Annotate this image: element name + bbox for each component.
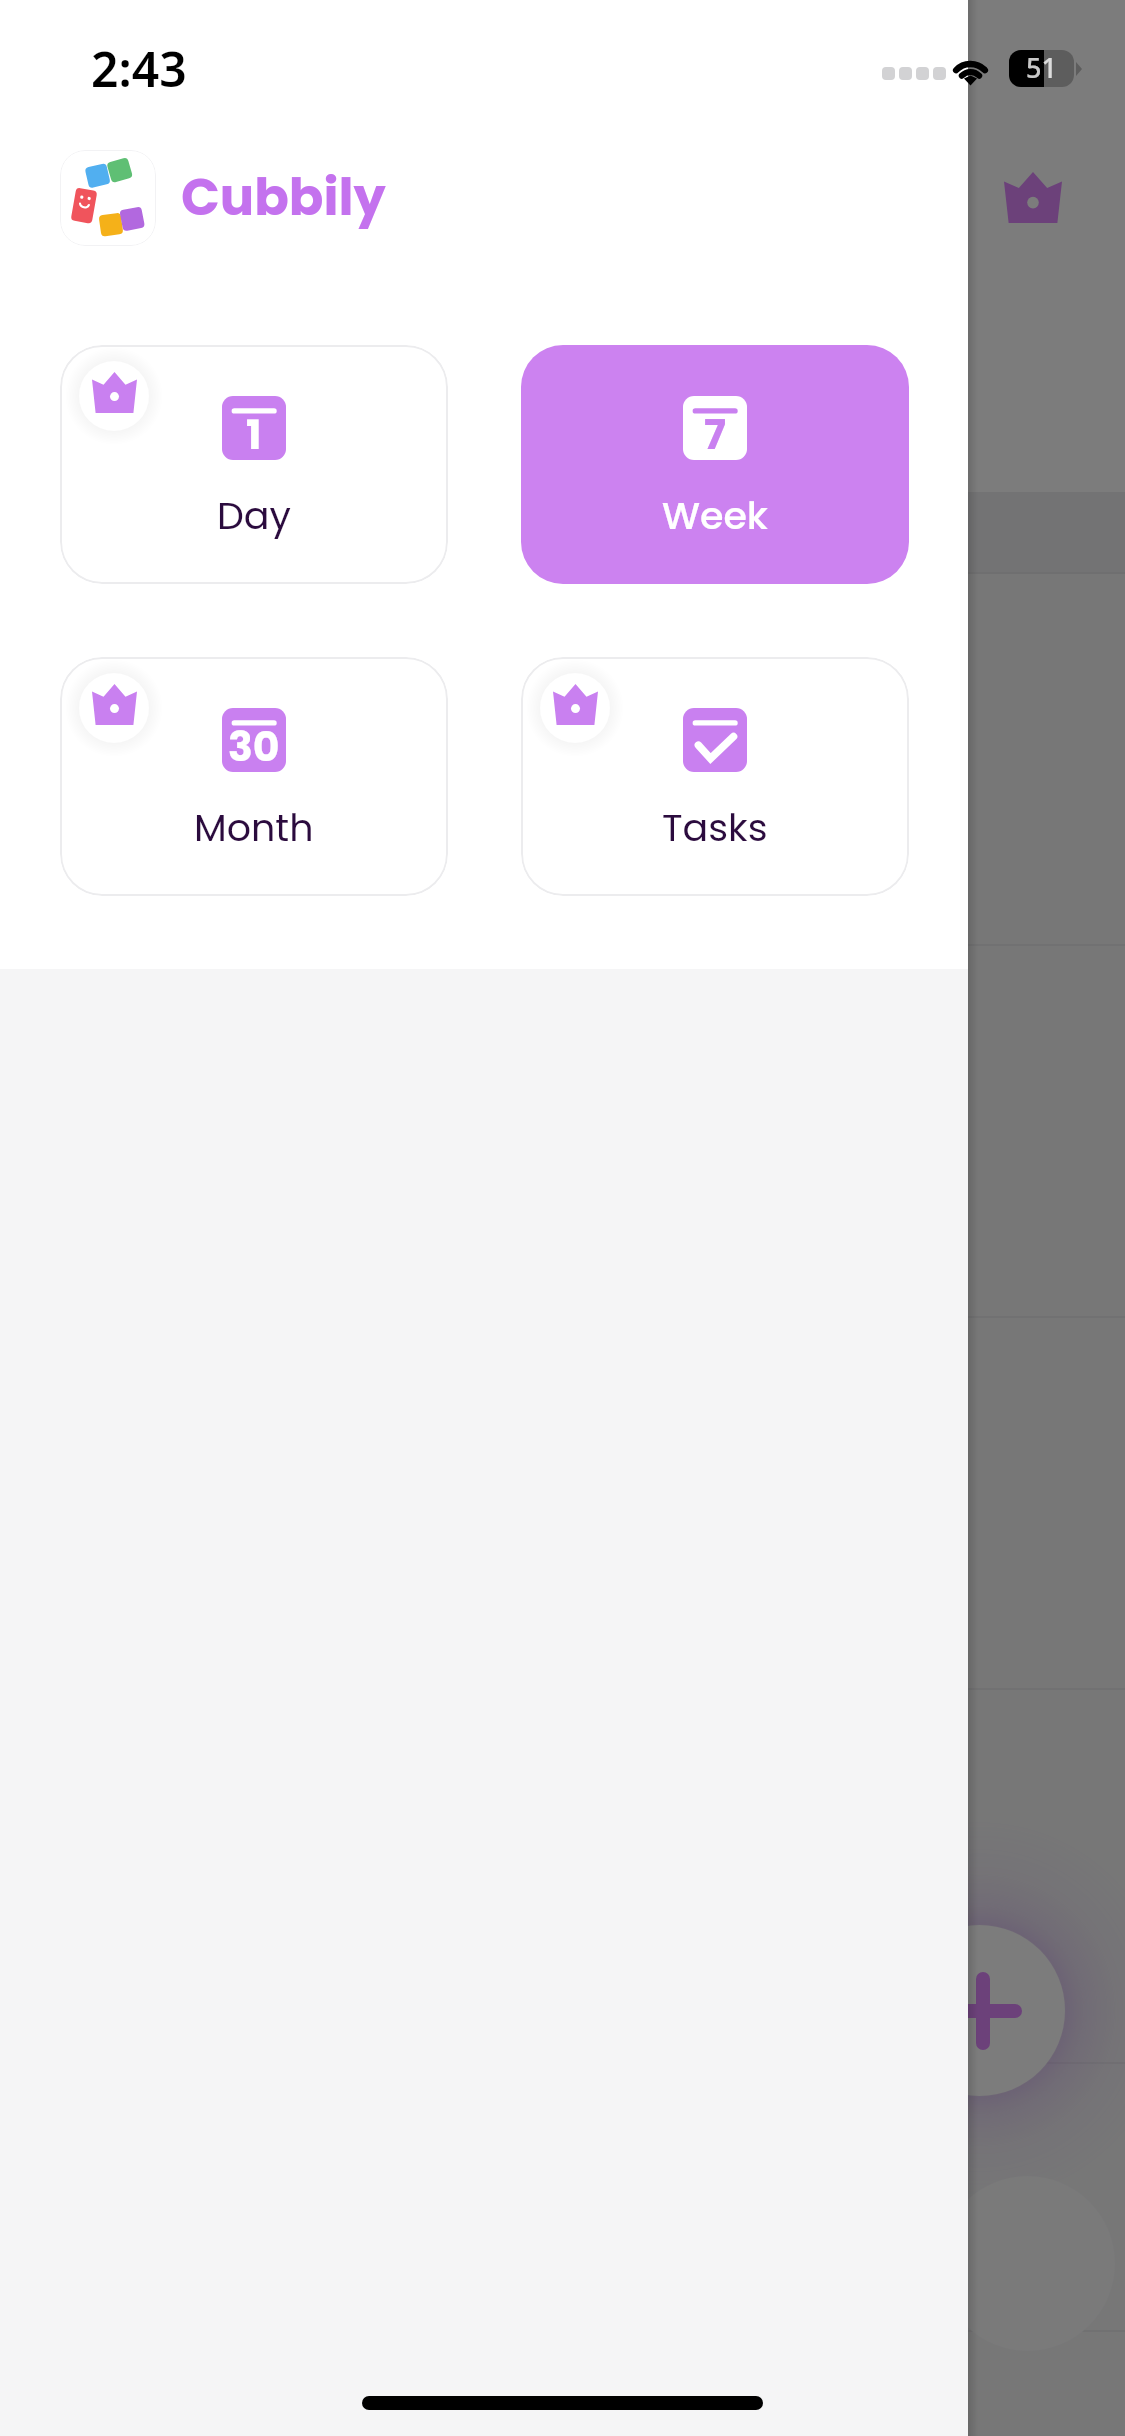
staticText: Tasks <box>662 801 768 854</box>
staticText: Week <box>662 489 768 542</box>
button[interactable]: 30 <box>60 657 448 896</box>
staticText: Month <box>194 801 314 854</box>
staticText: 51 <box>1026 49 1057 86</box>
staticText: Day <box>217 489 291 542</box>
button[interactable]: Tasks <box>521 657 909 896</box>
staticText: 2:43 <box>91 36 187 101</box>
staticText: 7 <box>704 406 726 460</box>
button[interactable]: 7 <box>521 345 909 584</box>
button[interactable]: 1 <box>60 345 448 584</box>
staticText: 1 <box>246 406 262 460</box>
staticText: Cubbily <box>181 161 386 232</box>
button[interactable]: Add <box>894 1925 1065 2096</box>
staticText: 30 <box>228 718 280 772</box>
